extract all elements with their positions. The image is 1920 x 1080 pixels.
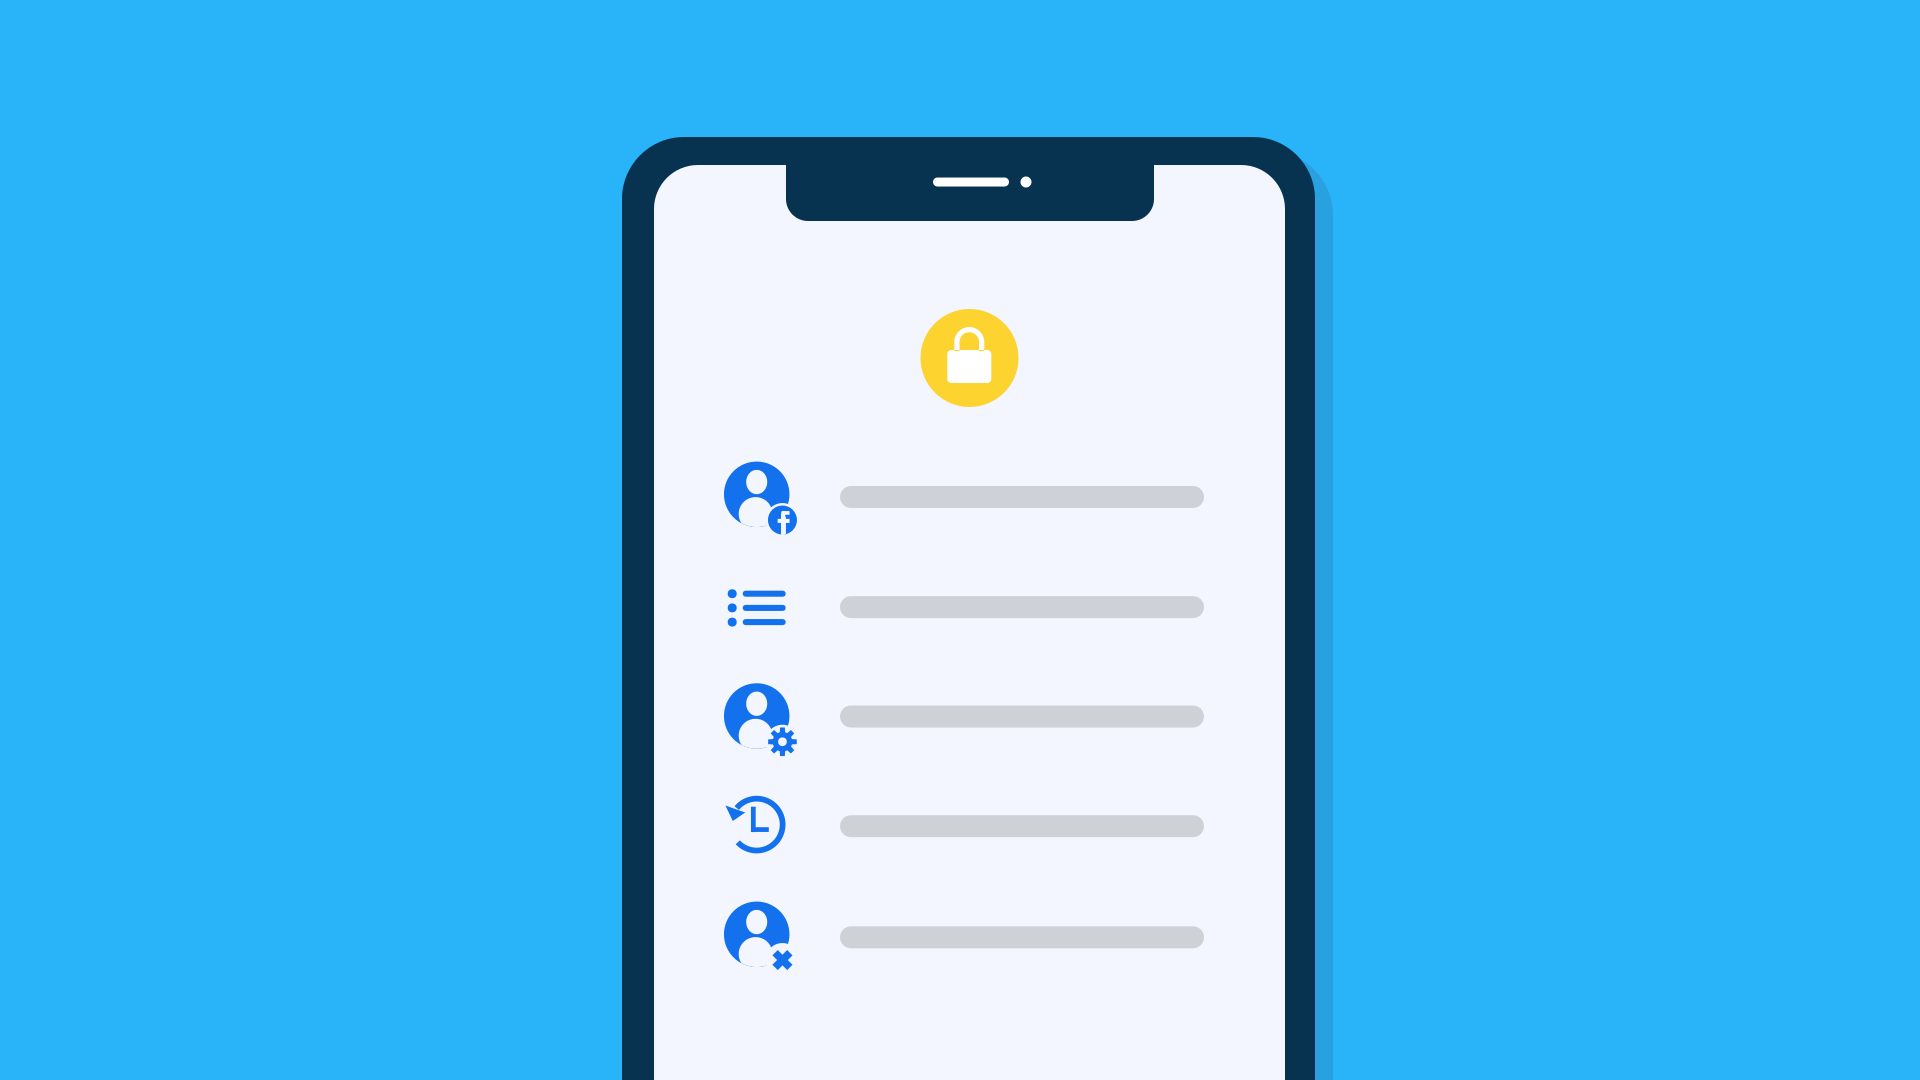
button[interactable]: Remove account	[713, 892, 1217, 982]
button[interactable]: Privacy settings	[920, 309, 1018, 407]
button[interactable]: Account settings	[713, 671, 1217, 761]
button[interactable]: Facebook account	[713, 452, 1217, 542]
button[interactable]: Recent activity	[713, 781, 1217, 871]
button[interactable]: Activity log	[713, 562, 1217, 652]
